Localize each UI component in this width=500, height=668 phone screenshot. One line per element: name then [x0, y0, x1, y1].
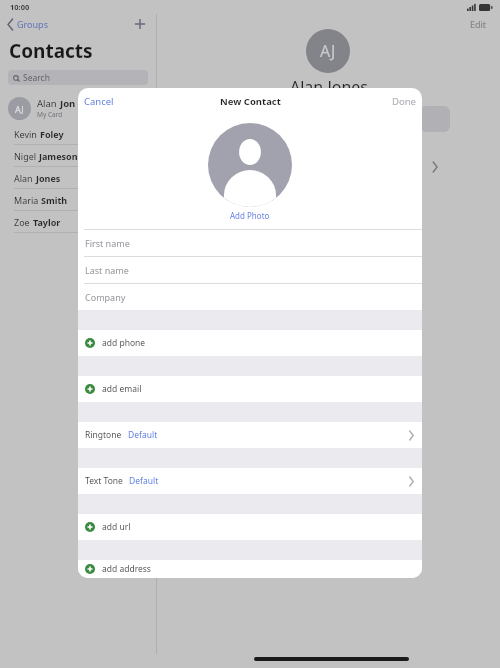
button[interactable]: Last name [78, 257, 422, 283]
staticText: Cancel [84, 95, 114, 108]
staticText: First name [85, 237, 130, 249]
button[interactable]: Done [392, 95, 416, 108]
staticText: Jameson [39, 150, 78, 162]
button[interactable]: Company [78, 284, 422, 310]
staticText: Alan Jones [290, 76, 369, 98]
staticText: AJ [320, 40, 336, 62]
button[interactable]: Zoe [0, 211, 156, 233]
staticText: Alan [37, 97, 60, 110]
button[interactable]: Ringtone [78, 422, 422, 448]
staticText: add address [102, 563, 151, 575]
button[interactable]: Groups [7, 18, 48, 30]
staticText: add phone [102, 337, 146, 349]
staticText: Alan [14, 172, 36, 184]
staticText: Nigel [14, 150, 39, 162]
button[interactable]: Text Tone [78, 468, 422, 494]
button[interactable]: add address [78, 560, 422, 578]
staticText: Contacts [9, 38, 93, 64]
button[interactable]: Cancel [84, 95, 114, 108]
button[interactable]: Add contact [132, 16, 148, 32]
button[interactable]: First name [78, 230, 422, 256]
staticText: 10:00 [10, 2, 30, 12]
button[interactable]: Alan [0, 167, 156, 189]
button[interactable]: Kevin [0, 123, 156, 145]
staticText: Zoe [14, 216, 33, 228]
button[interactable]: add email [78, 376, 422, 402]
staticText: Taylor [33, 216, 61, 228]
staticText: My Card [37, 110, 63, 119]
button[interactable]: AJ [8, 93, 156, 123]
button[interactable]: add phone [78, 330, 422, 356]
staticText: Company [85, 291, 126, 303]
staticText: Jon [60, 97, 76, 110]
staticText: Edit [470, 18, 487, 30]
button[interactable]: Add Photo [208, 123, 292, 221]
staticText: Kevin [14, 128, 40, 140]
staticText: Maria [14, 194, 41, 206]
staticText: Groups [17, 18, 48, 30]
staticText: Last name [85, 264, 129, 276]
staticText: Jones [36, 172, 61, 184]
staticText: Done [392, 95, 416, 108]
staticText: Default [128, 429, 158, 441]
staticText: Search [23, 72, 50, 84]
staticText: AJ [15, 103, 24, 115]
staticText: Smith [41, 194, 68, 206]
staticText: Foley [40, 128, 64, 140]
button[interactable]: Search [8, 70, 148, 85]
staticText: New Contact [220, 95, 281, 108]
button[interactable]: Maria [0, 189, 156, 211]
staticText: Add Photo [230, 210, 270, 221]
button[interactable]: add url [78, 514, 422, 540]
staticText: Text Tone [85, 475, 123, 487]
staticText: Ringtone [85, 429, 122, 441]
staticText: add url [102, 521, 131, 533]
staticText: add email [102, 383, 142, 395]
staticText: Default [129, 475, 159, 487]
button[interactable]: Nigel [0, 145, 156, 167]
